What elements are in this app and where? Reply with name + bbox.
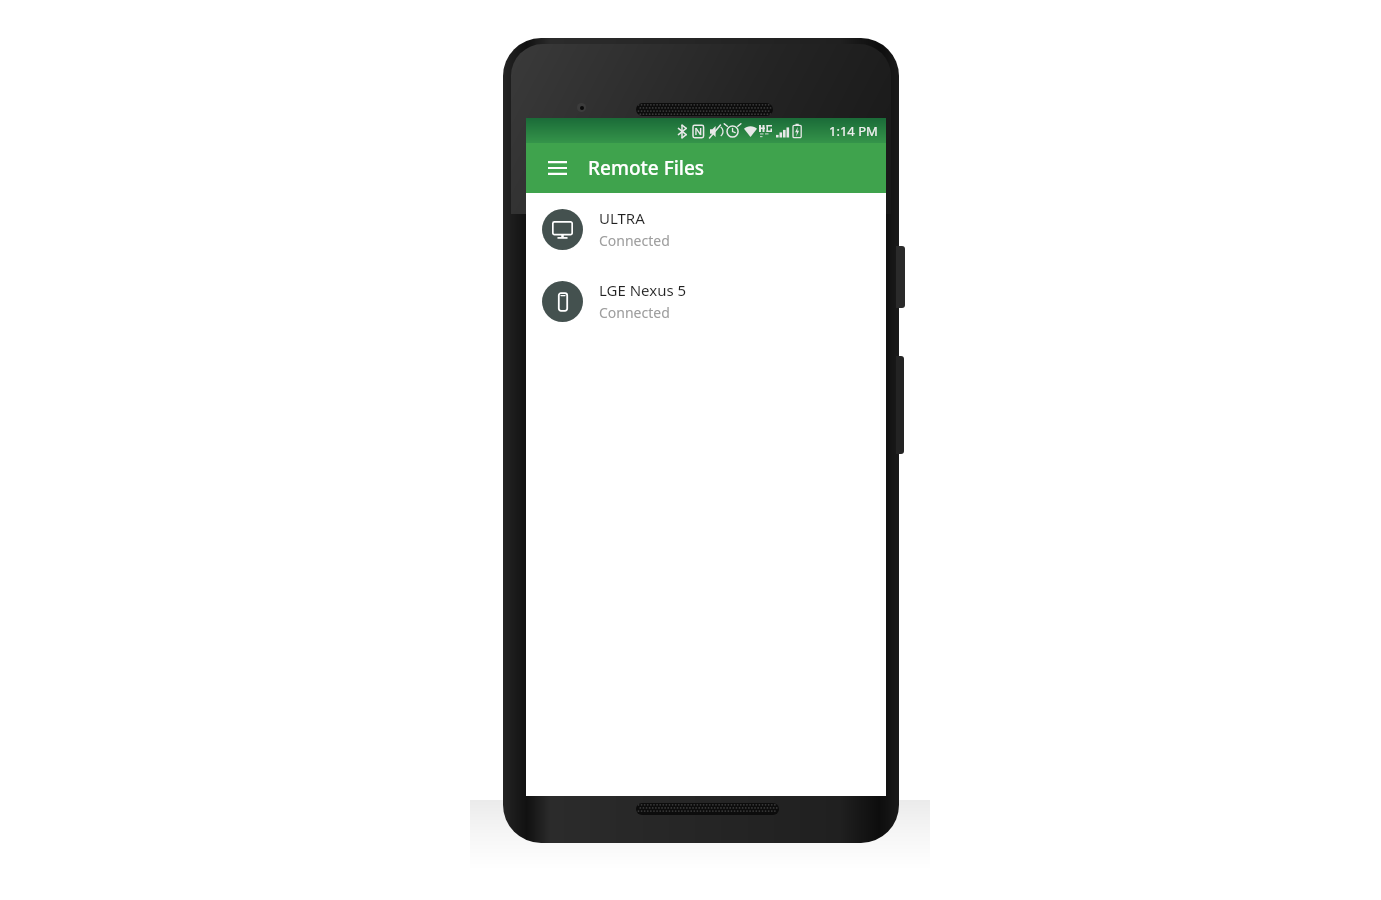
staticText: ULTRA <box>599 208 645 228</box>
staticText: Remote Files <box>588 155 705 181</box>
staticText: 1:14 PM <box>829 122 878 140</box>
button[interactable]: LGE Nexus 5 <box>526 265 886 337</box>
button[interactable]: Open navigation menu <box>540 151 574 185</box>
staticText: Connected <box>599 231 670 250</box>
staticText: LGE Nexus 5 <box>599 280 687 300</box>
staticText: Connected <box>599 303 670 322</box>
button[interactable]: ULTRA <box>526 193 886 265</box>
